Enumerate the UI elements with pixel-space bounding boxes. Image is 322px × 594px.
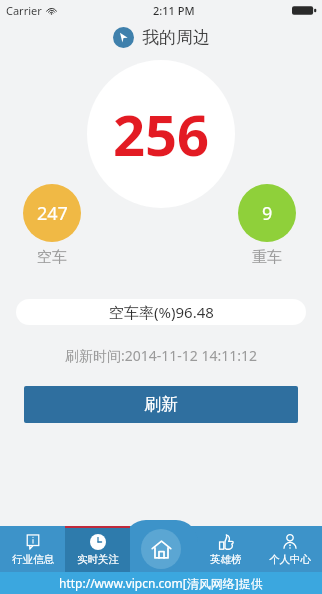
staticText: 英雄榜 <box>210 553 242 566</box>
button[interactable]: 刷新 <box>24 386 298 423</box>
staticText: 我的周边 <box>142 27 210 48</box>
staticText: 个人中心 <box>269 553 311 566</box>
staticText: 重车 <box>252 248 282 267</box>
staticText: 刷新时间:2014-11-12 14:11:12 <box>0 346 322 365</box>
staticText: 行业信息 <box>12 553 54 566</box>
staticText: 2:11 PM <box>153 3 195 18</box>
staticText: 实时关注 <box>77 553 119 566</box>
staticText: Carrier <box>6 3 42 18</box>
button[interactable]: 空车率(%)96.48 <box>16 299 306 325</box>
staticText: 空车 <box>37 248 67 267</box>
staticText: 刷新 <box>144 394 178 415</box>
button[interactable]: 个人中心 <box>258 526 322 572</box>
staticText: 9 <box>262 201 273 226</box>
staticText: 247 <box>37 201 68 226</box>
staticText: 空车率(%)96.48 <box>109 302 214 322</box>
button[interactable]: 首页 <box>141 529 181 569</box>
button[interactable]: 行业信息 <box>0 526 65 572</box>
staticText: 256 <box>113 96 210 172</box>
button[interactable]: 英雄榜 <box>194 526 258 572</box>
button[interactable]: 实时关注 <box>65 526 130 572</box>
staticText: http://www.vipcn.com[清风网络]提供 <box>59 575 263 591</box>
